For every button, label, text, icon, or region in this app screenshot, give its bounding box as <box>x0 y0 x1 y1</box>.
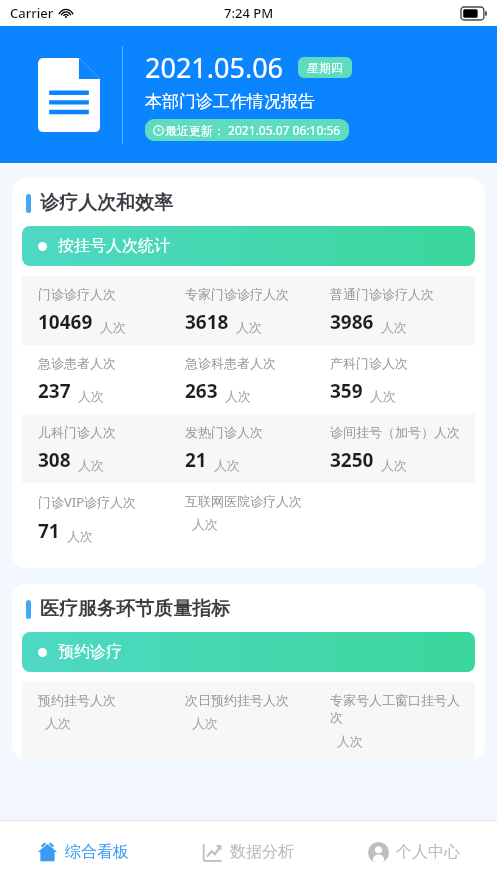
button[interactable]: 个人中心 <box>331 821 497 883</box>
staticText: 门诊VIP诊疗人次 <box>38 493 137 511</box>
staticText: 预约诊疗 <box>58 642 122 662</box>
staticText: 71 <box>38 518 60 544</box>
staticText: 最近更新： 2021.05.07 06:10:56 <box>165 122 341 138</box>
staticText: 普通门诊诊疗人次 <box>330 286 434 302</box>
button[interactable]: 预约诊疗 <box>22 632 475 672</box>
staticText: 门诊诊疗人次 <box>38 286 116 302</box>
staticText: 产科门诊人次 <box>330 355 408 371</box>
button[interactable]: 按挂号人次统计 <box>22 226 475 266</box>
staticText: 3618 <box>185 309 229 335</box>
staticText: 医疗服务环节质量指标 <box>40 597 230 621</box>
staticText: 7:24 PM <box>224 4 274 22</box>
staticText: 人次 <box>78 457 104 473</box>
staticText: 308 <box>38 447 71 473</box>
button[interactable]: 数据分析 <box>165 821 331 883</box>
staticText: 预约挂号人次 <box>38 692 116 708</box>
staticText: 人次 <box>381 319 407 335</box>
staticText: 263 <box>185 378 218 404</box>
staticText: 星期四 <box>307 60 343 75</box>
staticText: 人次 <box>192 715 218 731</box>
staticText: 人次 <box>192 516 218 532</box>
staticText: 互联网医院诊疗人次 <box>185 493 302 509</box>
staticText: 急诊患者人次 <box>38 355 116 371</box>
staticText: 专家号人工窗口挂号人次 <box>330 692 467 726</box>
staticText: 专家门诊诊疗人次 <box>185 286 289 302</box>
staticText: 2021.05.06 <box>145 49 284 86</box>
staticText: 359 <box>330 378 363 404</box>
staticText: 人次 <box>381 457 407 473</box>
staticText: 综合看板 <box>65 842 129 862</box>
staticText: 3250 <box>330 447 374 473</box>
staticText: 21 <box>185 447 207 473</box>
staticText: 发热门诊人次 <box>185 424 263 440</box>
staticText: 本部门诊工作情况报告 <box>145 91 315 112</box>
staticText: 数据分析 <box>230 842 294 862</box>
staticText: 人次 <box>236 319 262 335</box>
staticText: 个人中心 <box>396 842 460 862</box>
staticText: 人次 <box>225 388 251 404</box>
staticText: 次日预约挂号人次 <box>185 692 289 708</box>
staticText: 人次 <box>78 388 104 404</box>
staticText: 儿科门诊人次 <box>38 424 116 440</box>
staticText: 人次 <box>67 528 93 544</box>
staticText: 人次 <box>100 319 126 335</box>
staticText: 10469 <box>38 309 93 335</box>
staticText: 3986 <box>330 309 374 335</box>
staticText: Carrier <box>10 4 54 22</box>
staticText: 按挂号人次统计 <box>58 236 170 256</box>
staticText: 237 <box>38 378 71 404</box>
staticText: 人次 <box>214 457 240 473</box>
staticText: 诊间挂号（加号）人次 <box>330 424 460 440</box>
staticText: 急诊科患者人次 <box>185 355 276 371</box>
staticText: 人次 <box>370 388 396 404</box>
button[interactable]: 综合看板 <box>0 821 165 883</box>
staticText: 人次 <box>45 715 71 731</box>
staticText: 诊疗人次和效率 <box>40 191 173 215</box>
staticText: 人次 <box>337 733 363 749</box>
